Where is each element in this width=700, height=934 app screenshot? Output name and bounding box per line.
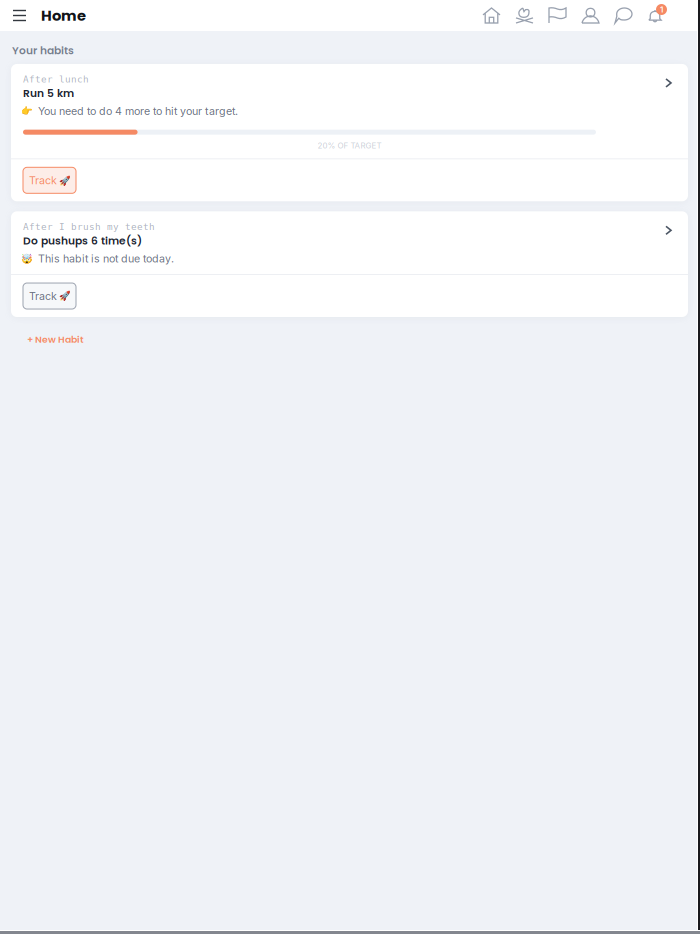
button[interactable]: Profile (574, 0, 607, 31)
staticText: You need to do 4 more to hit your target… (38, 105, 238, 118)
staticText: 🚀 (59, 291, 71, 301)
button[interactable]: Campfire (508, 0, 541, 31)
staticText: 🤯 (21, 253, 33, 264)
staticText: 👉 (21, 106, 33, 117)
staticText: 1 (660, 5, 663, 14)
staticText: Run 5 km (23, 86, 74, 101)
staticText: + New Habit (27, 333, 84, 346)
button[interactable]: Track (23, 283, 76, 309)
button[interactable]: Open habit (658, 74, 688, 95)
button[interactable]: + New Habit (11, 317, 102, 356)
staticText: Home (41, 5, 86, 26)
button[interactable]: Messages (607, 0, 640, 31)
button[interactable]: Open habit (658, 221, 688, 242)
button[interactable]: Menu (0, 0, 39, 31)
button[interactable]: Notifications (640, 0, 680, 31)
staticText: 20% OF TARGET (317, 141, 381, 150)
staticText: This habit is not due today. (38, 252, 174, 265)
staticText: Your habits (12, 43, 74, 58)
staticText: 🚀 (59, 175, 71, 186)
staticText: After lunch (23, 74, 89, 85)
button[interactable]: Goals (541, 0, 574, 31)
button[interactable]: Track (23, 167, 76, 193)
staticText: Track (29, 174, 57, 187)
staticText: After I brush my teeth (23, 221, 155, 232)
button[interactable]: Home (475, 0, 508, 31)
staticText: Do pushups 6 time(s) (23, 233, 142, 248)
staticText: Track (29, 290, 57, 302)
